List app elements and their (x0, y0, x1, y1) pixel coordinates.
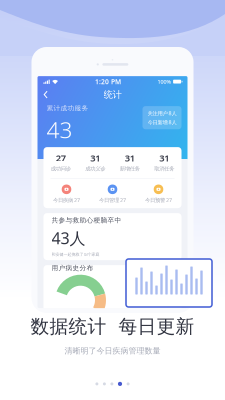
staticText: 取消任务 (154, 165, 174, 172)
staticText: 31 (159, 152, 169, 164)
staticText: 100% (157, 78, 171, 85)
staticText: 成功义诊 (85, 165, 105, 172)
staticText: 关注用户 8人 (147, 110, 176, 117)
staticText: 数据统计 每日更新 (30, 315, 194, 338)
staticText: 27 (56, 152, 66, 164)
staticText: 和安健一起挽救了43个家庭 (51, 252, 99, 257)
staticText: 统计 (103, 89, 121, 100)
staticText: 31 (125, 152, 135, 164)
staticText: 31 (90, 152, 100, 164)
staticText: 成功问诊 (51, 165, 71, 172)
staticText: 累计成功服务 (46, 104, 88, 112)
staticText: 共参与救助心梗脑卒中 (51, 216, 121, 224)
staticText: 清晰明了今日疾病管理数量 (64, 346, 160, 356)
staticText: 今日新增 8人 (147, 119, 176, 126)
staticText: 新增任务 (120, 165, 140, 172)
staticText: 今日预警 27 (145, 196, 172, 204)
staticText: 用户病史分布 (51, 264, 93, 272)
button[interactable]: Back (37, 88, 54, 102)
staticText: 1:20 PM (95, 77, 121, 86)
staticText: 43 (46, 114, 72, 144)
staticText: 今日疾病 27 (53, 196, 80, 204)
staticText: 今日管理 27 (99, 196, 126, 204)
staticText: 43人 (51, 227, 85, 249)
